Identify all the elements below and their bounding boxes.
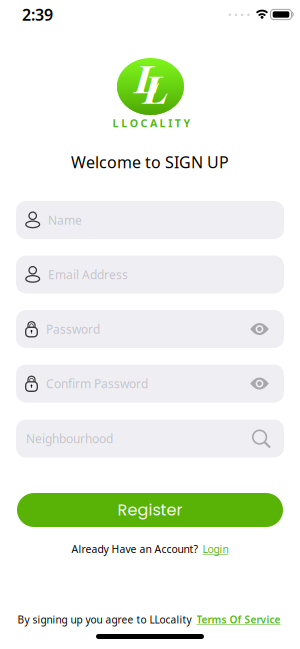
staticText: C: [140, 116, 147, 130]
staticText: L: [160, 116, 166, 130]
button[interactable]: Show confirm password: [250, 377, 269, 390]
staticText: L: [134, 52, 159, 108]
staticText: I: [168, 116, 172, 130]
staticText: Login: [202, 542, 228, 556]
staticText: Terms Of Service: [196, 613, 280, 626]
staticText: Confirm Password: [46, 375, 148, 391]
button[interactable]: Register: [17, 493, 283, 527]
staticText: Register: [117, 499, 182, 521]
staticText: Email Address: [48, 266, 128, 282]
staticText: L: [121, 116, 127, 130]
staticText: Y: [183, 116, 190, 130]
staticText: Name: [48, 212, 82, 228]
staticText: A: [150, 116, 157, 130]
staticText: T: [175, 116, 181, 130]
staticText: O: [130, 116, 138, 130]
button[interactable]: Login: [202, 542, 228, 556]
button[interactable]: Terms Of Service: [196, 613, 280, 626]
staticText: Neighbourhood: [26, 430, 113, 446]
staticText: 2:39: [22, 4, 53, 25]
staticText: By signing up you agree to LLocality: [17, 613, 191, 626]
staticText: L: [143, 62, 168, 118]
staticText: Welcome to SIGN UP: [71, 151, 229, 173]
staticText: Already Have an Account?: [71, 542, 198, 556]
staticText: Password: [46, 321, 100, 337]
staticText: L: [113, 116, 119, 130]
button[interactable]: Show password: [250, 322, 269, 336]
